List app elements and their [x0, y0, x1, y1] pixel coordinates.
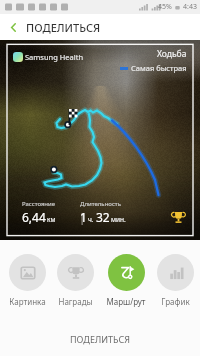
- staticText: Картинка: [9, 296, 46, 307]
- button[interactable]: Back: [0, 14, 26, 40]
- staticText: Длительность: [80, 200, 121, 208]
- button[interactable]: Награды: [57, 254, 94, 307]
- staticText: 4:43: [183, 2, 197, 12]
- staticText: Samsung Health: [25, 52, 84, 62]
- staticText: Самая быстрая: [131, 63, 187, 73]
- button[interactable]: Марш/рут: [106, 254, 146, 307]
- staticText: ПОДЕЛИТЬСЯ: [26, 20, 101, 35]
- button[interactable]: График: [157, 254, 194, 307]
- staticText: График: [161, 296, 190, 307]
- button[interactable]: ПОДЕЛИТЬСЯ: [0, 322, 200, 356]
- staticText: 45%: [158, 2, 172, 12]
- staticText: Расстояние: [22, 200, 56, 208]
- staticText: ПОДЕЛИТЬСЯ: [70, 333, 130, 345]
- staticText: 6,44: [22, 209, 46, 225]
- staticText: ч.: [88, 215, 94, 224]
- staticText: 32: [96, 209, 110, 225]
- staticText: Ходьба: [157, 48, 187, 60]
- staticText: 1: [80, 209, 87, 225]
- staticText: мин.: [111, 215, 126, 224]
- button[interactable]: Картинка: [9, 254, 46, 307]
- staticText: Награды: [58, 296, 93, 307]
- staticText: км: [47, 215, 56, 224]
- staticText: Марш/рут: [106, 296, 146, 307]
